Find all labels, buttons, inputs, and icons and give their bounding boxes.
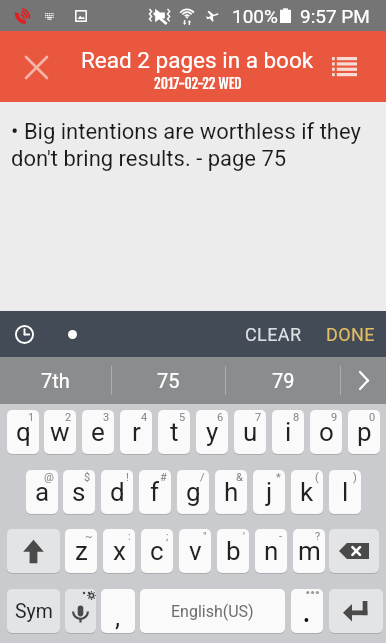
staticText: q bbox=[16, 417, 31, 447]
staticText: ! bbox=[126, 471, 129, 484]
button[interactable]: o bbox=[310, 410, 342, 454]
button[interactable]: y bbox=[196, 410, 228, 454]
staticText: 2017-02-22 WED bbox=[154, 75, 242, 93]
staticText: u bbox=[243, 417, 258, 447]
staticText: t bbox=[170, 417, 179, 447]
staticText: English(US) bbox=[171, 602, 254, 621]
button[interactable]: Marker bbox=[57, 319, 87, 349]
staticText: j bbox=[266, 477, 273, 507]
staticText: 100% bbox=[232, 5, 278, 27]
button[interactable]: t bbox=[158, 410, 190, 454]
button[interactable]: s bbox=[63, 470, 95, 514]
button[interactable]: Enter bbox=[329, 589, 383, 633]
button[interactable]: 7th bbox=[0, 357, 111, 404]
button[interactable]: m bbox=[293, 529, 325, 573]
button[interactable]: List bbox=[316, 39, 372, 95]
button[interactable]: Time bbox=[9, 319, 39, 349]
button[interactable]: Shift bbox=[7, 529, 60, 573]
staticText: 2 bbox=[65, 411, 72, 424]
button[interactable]: CLEAR bbox=[235, 311, 315, 357]
staticText: • Big intentions are worthless if they d… bbox=[11, 119, 372, 171]
button[interactable]: Backspace bbox=[329, 529, 379, 573]
staticText: n bbox=[264, 536, 279, 566]
button[interactable]: DONE bbox=[315, 311, 386, 357]
staticText: ( bbox=[315, 471, 319, 484]
staticText: l bbox=[342, 477, 349, 507]
staticText: 1 bbox=[28, 411, 35, 424]
staticText: y bbox=[206, 417, 219, 447]
staticText: 5 bbox=[179, 411, 186, 424]
staticText: g bbox=[186, 477, 201, 507]
staticText: 7th bbox=[41, 369, 70, 392]
staticText: 9 bbox=[331, 411, 338, 424]
button[interactable]: x bbox=[103, 529, 135, 573]
button[interactable]: More bbox=[341, 357, 386, 404]
staticText: s bbox=[72, 477, 86, 507]
button[interactable]: 75 bbox=[112, 357, 225, 404]
staticText: : bbox=[128, 530, 131, 543]
button[interactable]: b bbox=[217, 529, 249, 573]
button[interactable]: Sym bbox=[7, 589, 60, 633]
button[interactable]: h bbox=[215, 470, 247, 514]
staticText: r bbox=[132, 417, 141, 447]
staticText: 3 bbox=[103, 411, 110, 424]
staticText: 7 bbox=[255, 411, 262, 424]
staticText: d bbox=[110, 477, 125, 507]
staticText: e bbox=[91, 417, 105, 447]
staticText: & bbox=[236, 471, 243, 484]
staticText: ? bbox=[315, 530, 321, 543]
staticText: " bbox=[203, 530, 207, 543]
staticText: m bbox=[298, 536, 321, 566]
staticText: / bbox=[200, 471, 205, 484]
button[interactable]: p bbox=[348, 410, 380, 454]
button[interactable]: i bbox=[272, 410, 304, 454]
staticText: 6 bbox=[217, 411, 224, 424]
staticText: Sym bbox=[15, 600, 53, 623]
button[interactable]: l bbox=[329, 470, 361, 514]
staticText: k bbox=[300, 477, 314, 507]
button[interactable]: v bbox=[179, 529, 211, 573]
staticText: ; bbox=[166, 530, 169, 543]
staticText: 8 bbox=[293, 411, 300, 424]
button[interactable]: n bbox=[255, 529, 287, 573]
staticText: 79 bbox=[272, 369, 295, 392]
button[interactable]: Period bbox=[291, 589, 323, 633]
button[interactable]: f bbox=[139, 470, 171, 514]
staticText: x bbox=[113, 536, 126, 566]
staticText: 0 bbox=[369, 411, 376, 424]
staticText: CLEAR bbox=[245, 324, 302, 345]
button[interactable]: , bbox=[101, 589, 135, 633]
staticText: - bbox=[279, 530, 283, 543]
staticText: c bbox=[150, 536, 164, 566]
button[interactable]: c bbox=[141, 529, 173, 573]
button[interactable]: Voice input bbox=[65, 589, 96, 633]
button[interactable]: u bbox=[234, 410, 266, 454]
button[interactable]: English(US) bbox=[140, 589, 285, 633]
button[interactable]: k bbox=[291, 470, 323, 514]
staticText: h bbox=[224, 477, 239, 507]
button[interactable]: g bbox=[177, 470, 209, 514]
staticText: v bbox=[189, 536, 202, 566]
staticText: Read 2 pages in a book bbox=[81, 47, 314, 73]
button[interactable]: 79 bbox=[226, 357, 340, 404]
button[interactable]: w bbox=[44, 410, 76, 454]
button[interactable]: a bbox=[26, 470, 58, 514]
button[interactable]: e bbox=[82, 410, 114, 454]
button[interactable]: r bbox=[120, 410, 152, 454]
staticText: # bbox=[160, 471, 167, 484]
button[interactable]: j bbox=[253, 470, 285, 514]
staticText: f bbox=[150, 477, 160, 507]
staticText: DONE bbox=[326, 324, 375, 345]
button[interactable]: q bbox=[7, 410, 39, 454]
staticText: 4 bbox=[141, 411, 148, 424]
button[interactable]: z bbox=[65, 529, 97, 573]
staticText: 75 bbox=[157, 369, 180, 392]
staticText: a bbox=[35, 477, 50, 507]
staticText: ~ bbox=[85, 530, 93, 543]
staticText: b bbox=[226, 536, 241, 566]
button[interactable]: d bbox=[101, 470, 133, 514]
button[interactable]: Close bbox=[8, 39, 64, 95]
staticText: i bbox=[285, 417, 292, 447]
staticText: w bbox=[50, 417, 70, 447]
staticText: $ bbox=[84, 471, 91, 484]
